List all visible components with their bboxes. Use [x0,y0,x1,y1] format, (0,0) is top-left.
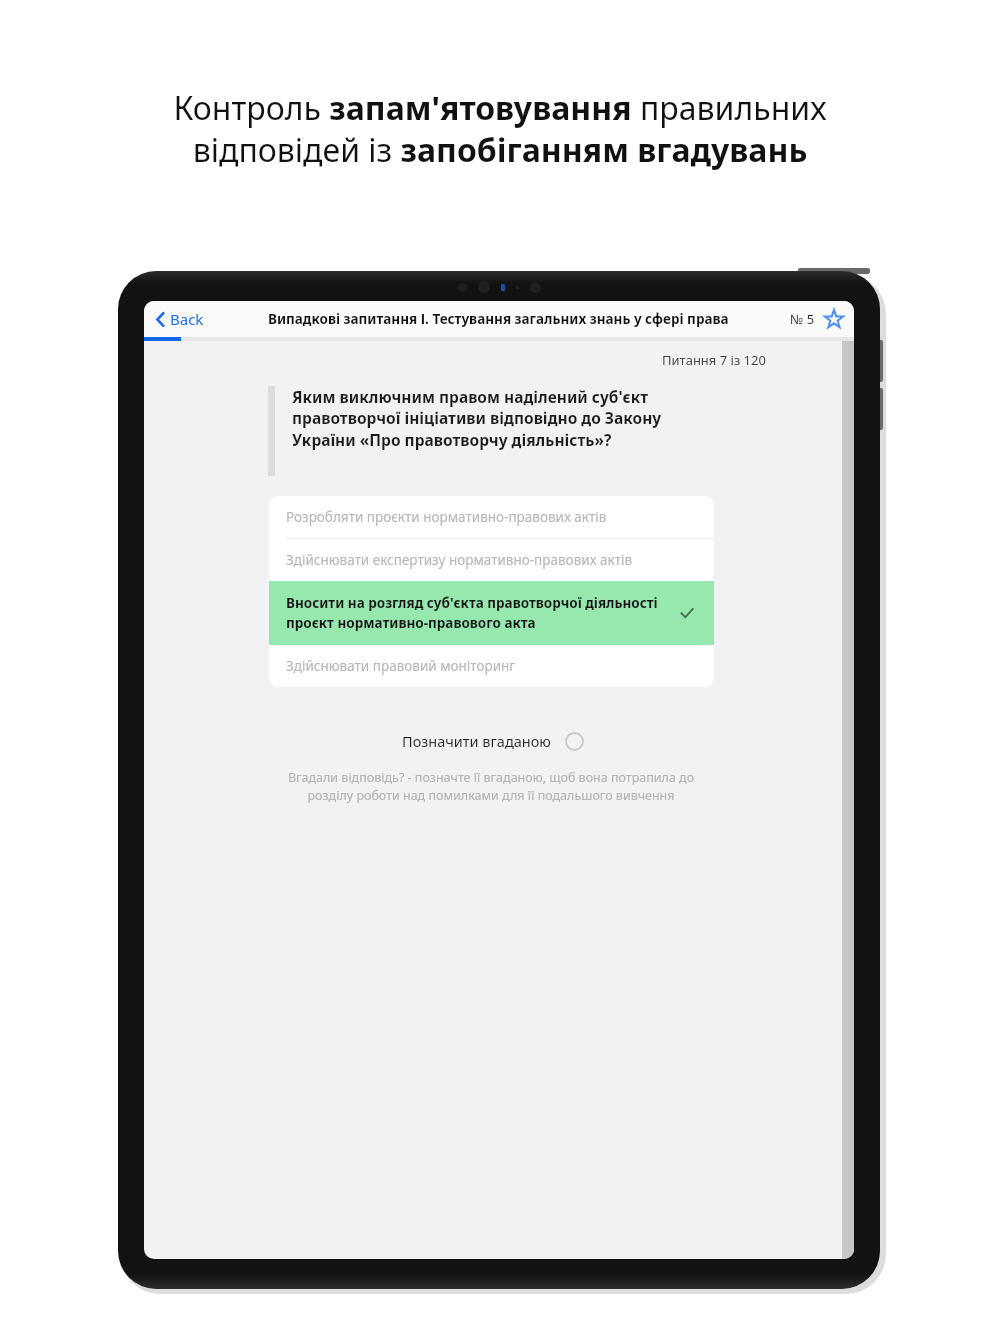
staticText: Питання 7 із 120 [662,351,766,369]
staticText: Здійснювати експертизу нормативно-правов… [286,551,700,569]
staticText: Вгадали відповідь? - позначте її вгадано… [268,769,714,804]
staticText: Розробляти проєкти нормативно-правових а… [286,508,700,526]
button[interactable]: Позначити вгаданою [396,725,590,757]
staticText: Back [170,309,204,329]
button[interactable]: Вносити на розгляд суб'єкта правотворчої… [269,581,714,645]
staticText: Позначити вгаданою [402,731,551,751]
staticText: Вносити на розгляд суб'єкта правотворчої… [286,594,670,632]
button[interactable]: Back [152,305,208,333]
button[interactable]: Здійснювати експертизу нормативно-правов… [269,539,714,581]
button[interactable]: Здійснювати правовий моніторинг [269,645,714,687]
staticText: Контроль запам'ятовування правильних від… [173,86,827,171]
staticText: № 5 [790,310,815,328]
staticText: Яким виключним правом наділений суб'єкт … [292,386,714,451]
staticText: Здійснювати правовий моніторинг [286,657,700,675]
staticText: Випадкові запитання І. Тестування загаль… [268,310,729,328]
button[interactable]: Розробляти проєкти нормативно-правових а… [269,496,714,538]
button[interactable]: Bookmark question [822,307,846,331]
